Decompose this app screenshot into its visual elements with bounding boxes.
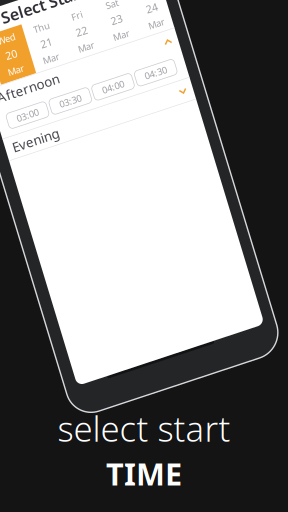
button[interactable]: Wed <box>0 41 17 92</box>
staticText: Mar <box>64 77 81 89</box>
button[interactable]: Fri <box>54 41 91 92</box>
staticText: Mar <box>27 77 44 89</box>
staticText: Wed <box>0 44 8 57</box>
staticText: 22 <box>66 60 78 74</box>
button[interactable]: Sun <box>128 41 165 92</box>
staticText: 04:00 <box>75 123 98 136</box>
staticText: TIME <box>106 453 182 494</box>
staticText: 03:00 <box>0 123 8 136</box>
staticText: Sat <box>103 44 116 57</box>
button[interactable]: Afternoon <box>0 93 162 115</box>
staticText: Mar <box>138 77 155 89</box>
button[interactable]: Thu <box>17 41 54 92</box>
staticText: 21 <box>29 60 41 74</box>
staticText: Mar <box>101 77 118 89</box>
staticText: Select Start Time <box>0 19 128 40</box>
staticText: Thu <box>27 44 44 57</box>
button[interactable]: 03:30 <box>20 122 62 138</box>
button[interactable]: Evening <box>0 145 162 167</box>
staticText: Evening <box>0 147 21 165</box>
staticText: 03:30 <box>30 123 53 136</box>
staticText: Mar <box>0 77 7 89</box>
staticText: Afternoon <box>0 95 37 113</box>
button[interactable]: Sat <box>91 41 128 92</box>
button[interactable]: 03:00 <box>0 122 17 138</box>
staticText: select start <box>57 405 230 451</box>
staticText: 24 <box>140 60 152 74</box>
button[interactable]: 04:00 <box>65 122 107 138</box>
